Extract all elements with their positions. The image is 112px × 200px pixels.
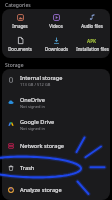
staticText: Analyze storage <box>20 186 62 194</box>
button[interactable]: Network storage <box>2 135 110 157</box>
staticText: APK <box>87 38 97 44</box>
button[interactable]: Audio files <box>74 9 110 29</box>
button[interactable]: Google Drive <box>2 113 110 135</box>
staticText: Installation files <box>76 46 109 52</box>
button[interactable]: Videos <box>38 9 74 29</box>
staticText: Audio files <box>81 23 103 29</box>
button[interactable]: Downloads <box>38 33 74 52</box>
staticText: Trash <box>20 164 35 172</box>
button[interactable]: Trash <box>2 157 110 179</box>
staticText: Storage <box>5 62 24 69</box>
staticText: Not signed in <box>20 126 46 131</box>
staticText: 113 GB / 512 GB <box>20 82 51 87</box>
staticText: Network storage <box>20 142 64 150</box>
button[interactable]: Analyze storage <box>2 179 110 200</box>
staticText: Not signed in <box>20 104 46 109</box>
button[interactable]: OneDrive <box>2 91 110 113</box>
button[interactable]: Internal storage <box>2 69 110 91</box>
staticText: Images <box>12 23 28 29</box>
staticText: Categories <box>5 2 31 9</box>
button[interactable]: Documents <box>2 33 38 52</box>
button[interactable]: Images <box>2 9 38 29</box>
staticText: Downloads <box>45 46 68 52</box>
staticText: Documents <box>8 46 32 52</box>
button[interactable]: APK <box>74 33 110 52</box>
staticText: Internal storage <box>20 74 63 82</box>
staticText: Google Drive <box>20 118 55 126</box>
staticText: Videos <box>49 23 63 29</box>
staticText: OneDrive <box>20 96 45 104</box>
